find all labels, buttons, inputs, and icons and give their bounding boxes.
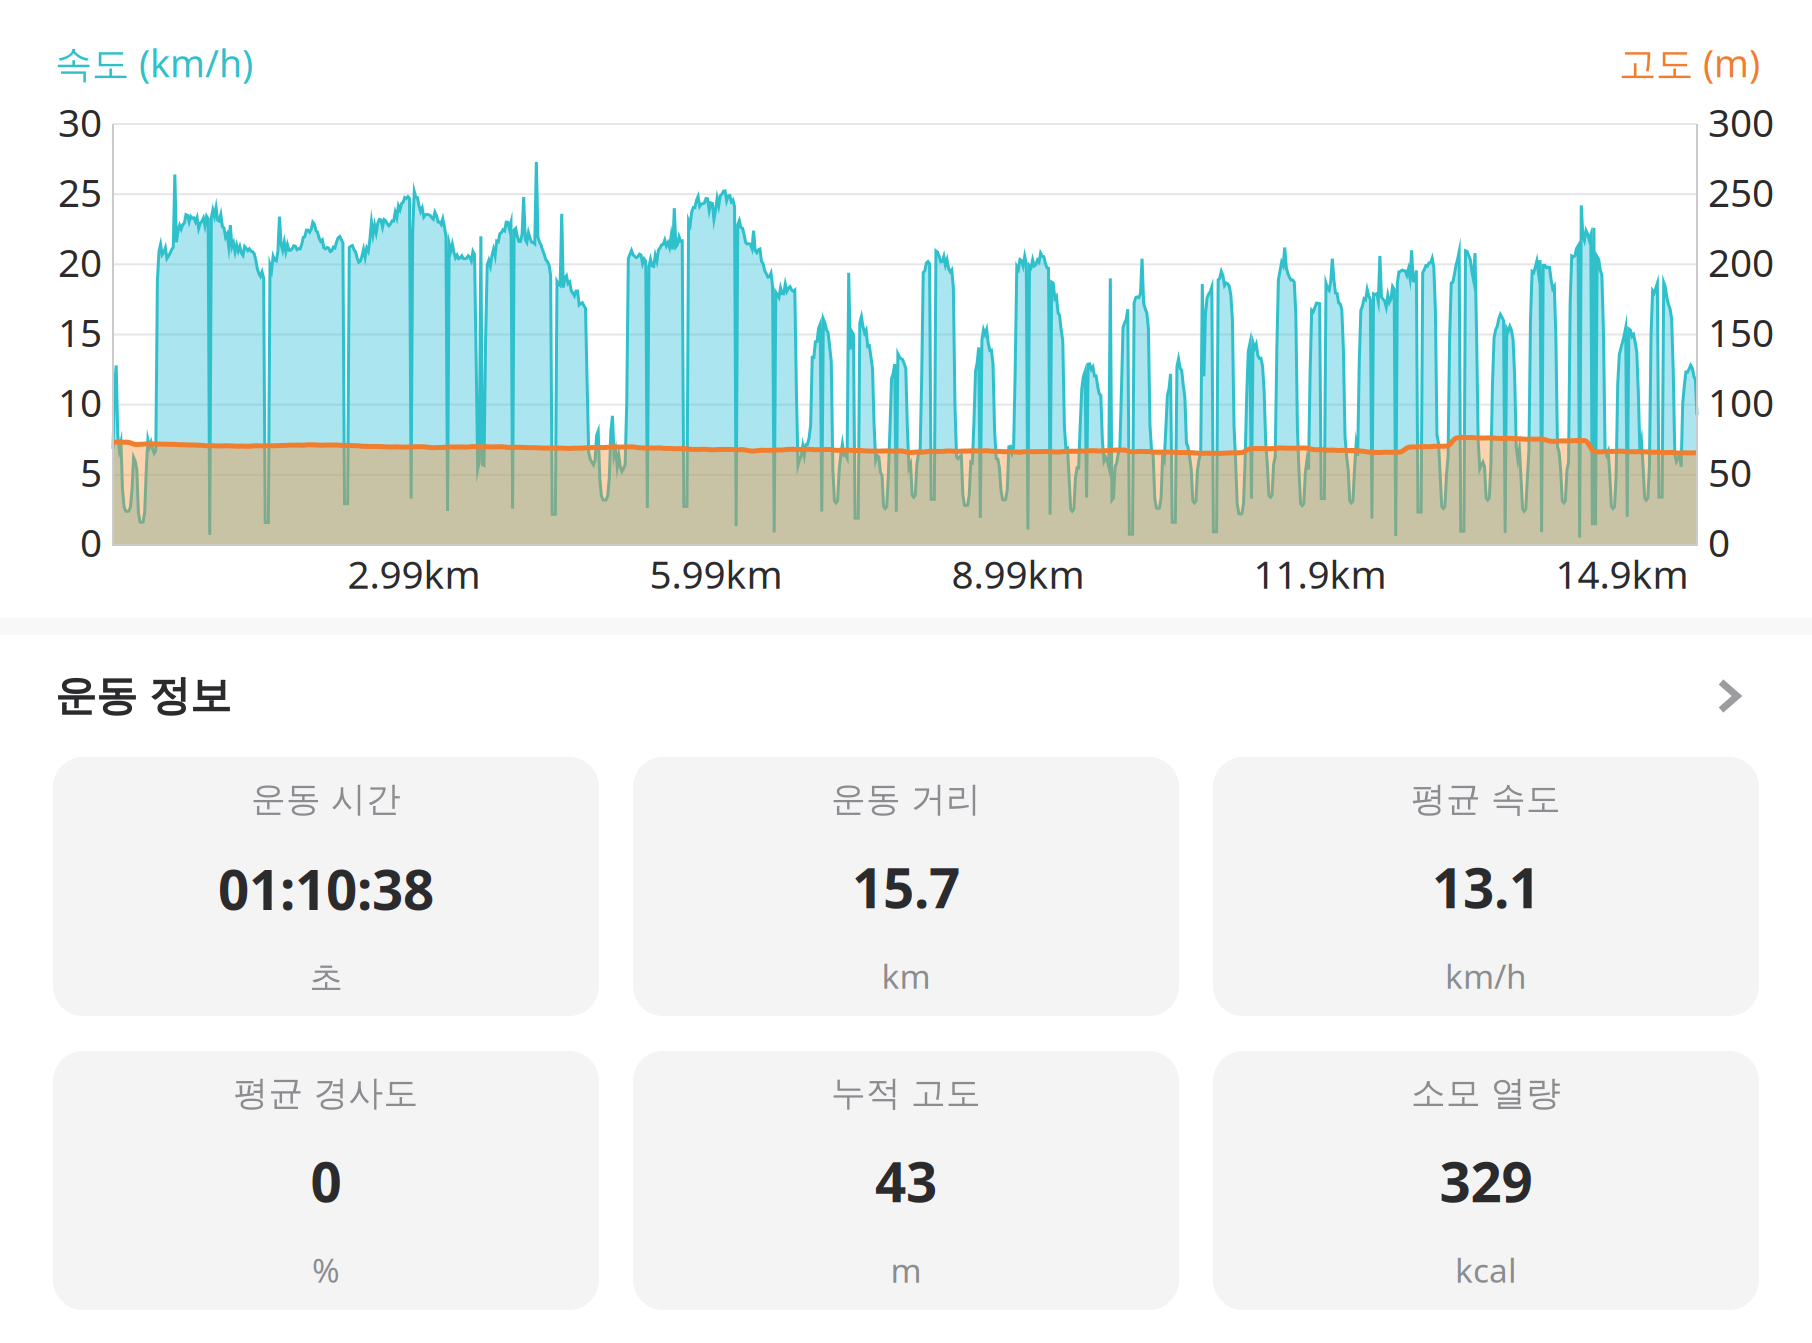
staticText: 평균 속도 <box>1411 778 1561 821</box>
staticText: 속도 (km/h) <box>55 38 253 88</box>
button[interactable]: 누적 고도 <box>633 1051 1179 1310</box>
staticText: 25 <box>58 166 102 218</box>
staticText: 50 <box>1708 446 1752 498</box>
staticText: 329 <box>1439 1145 1532 1217</box>
staticText: m <box>890 1248 921 1292</box>
button[interactable]: 운동 거리 <box>633 757 1179 1016</box>
staticText: 11.9km <box>1253 548 1386 599</box>
staticText: km/h <box>1445 954 1527 998</box>
staticText: 0 <box>1708 516 1730 568</box>
staticText: 운동 거리 <box>831 778 981 821</box>
staticText: 10 <box>58 376 102 428</box>
staticText: 5.99km <box>649 548 782 599</box>
staticText: 300 <box>1708 96 1774 148</box>
staticText: 43 <box>875 1145 937 1217</box>
staticText: km <box>881 954 930 998</box>
button[interactable]: 평균 경사도 <box>53 1051 599 1310</box>
staticText: 5 <box>80 446 102 498</box>
button[interactable]: 평균 속도 <box>1213 757 1759 1016</box>
button[interactable]: 운동 시간 <box>53 757 599 1016</box>
staticText: 누적 고도 <box>831 1072 981 1115</box>
staticText: 200 <box>1708 236 1774 288</box>
staticText: 운동 시간 <box>251 778 401 821</box>
staticText: kcal <box>1455 1248 1517 1292</box>
staticText: 고도 (m) <box>1619 38 1760 88</box>
staticText: 8.99km <box>951 548 1084 599</box>
staticText: 0 <box>80 516 102 568</box>
staticText: 14.9km <box>1555 548 1688 599</box>
staticText: 운동 정보 <box>55 671 231 721</box>
staticText: 소모 열량 <box>1411 1072 1561 1115</box>
staticText: 15.7 <box>852 851 960 923</box>
button[interactable]: 운동 정보 <box>0 635 1812 757</box>
button[interactable]: 소모 열량 <box>1213 1051 1759 1310</box>
staticText: 150 <box>1708 306 1774 358</box>
staticText: 20 <box>58 236 102 288</box>
staticText: 2.99km <box>347 548 480 599</box>
staticText: 100 <box>1708 376 1774 428</box>
staticText: 0 <box>310 1145 341 1217</box>
staticText: 평균 경사도 <box>233 1072 418 1115</box>
staticText: 13.1 <box>1432 851 1540 923</box>
staticText: % <box>312 1248 340 1292</box>
staticText: 초 <box>309 957 342 998</box>
staticText: 01:10:38 <box>218 852 434 925</box>
staticText: 15 <box>58 306 102 358</box>
staticText: 30 <box>58 96 102 148</box>
staticText: 250 <box>1708 166 1774 218</box>
